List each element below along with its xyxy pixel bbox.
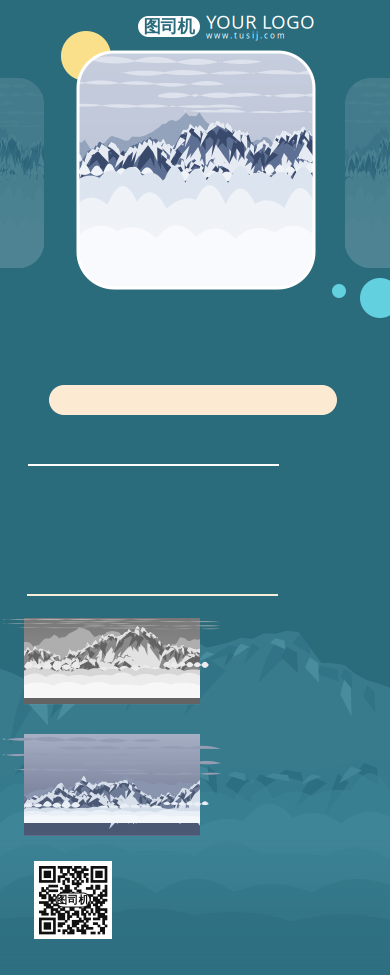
staticText: YOUR LOGO xyxy=(206,9,315,34)
staticText: 图司机 xyxy=(56,893,89,906)
staticText: w w w . t u s i j . c o m xyxy=(206,30,284,41)
staticText: 图司机 xyxy=(143,16,194,37)
